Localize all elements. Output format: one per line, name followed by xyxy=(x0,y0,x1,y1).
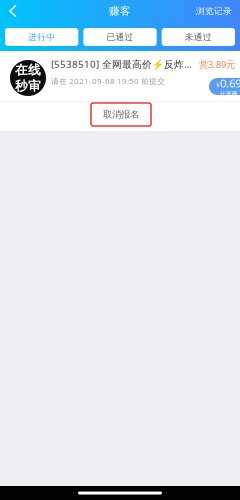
staticText: 浏览记录 xyxy=(196,5,232,16)
staticText: 在线 xyxy=(15,62,41,78)
staticText: ¥ xyxy=(216,80,220,90)
button[interactable]: Back xyxy=(0,0,26,22)
staticText: 取消报名 xyxy=(103,109,139,120)
button[interactable]: 取消报名 xyxy=(91,103,151,126)
staticText: 已通过 xyxy=(106,31,133,42)
staticText: [5538510] 全网最高价⚡反炸… xyxy=(51,57,192,71)
staticText: 秒审 xyxy=(15,78,41,94)
button[interactable]: 进行中 xyxy=(5,28,78,46)
button[interactable]: ¥ xyxy=(209,78,240,95)
staticText: 赏3.89元 xyxy=(199,58,235,71)
button[interactable]: 未通过 xyxy=(162,28,235,46)
staticText: 进行中 xyxy=(28,31,55,42)
staticText: 请在 2021-09-08 19:50 前提交 xyxy=(51,76,165,86)
button[interactable]: 已通过 xyxy=(83,28,157,46)
staticText: 分享赚 xyxy=(219,90,237,97)
staticText: 未通过 xyxy=(185,31,212,42)
button[interactable]: 浏览记录 xyxy=(196,0,240,22)
staticText: 0.69 xyxy=(220,75,240,91)
staticText: 赚客 xyxy=(109,4,131,18)
